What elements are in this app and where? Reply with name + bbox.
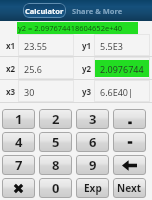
button[interactable]: x1 (0, 34, 76, 56)
staticText: 23.55 (24, 40, 48, 52)
button[interactable]: y3 (76, 80, 152, 102)
staticText: 4 (15, 133, 23, 151)
staticText: 5.5E3 (100, 40, 123, 52)
other: Clear (13, 183, 24, 194)
staticText: Share & More (72, 6, 122, 16)
staticText: 5 (52, 133, 60, 151)
staticText: y2 (82, 63, 92, 74)
button[interactable]: Share & More (72, 3, 122, 18)
button[interactable]: Backspace (113, 155, 146, 175)
button[interactable]: x3 (0, 80, 76, 102)
staticText: 3 (89, 110, 97, 128)
staticText: 2 (52, 110, 60, 128)
button[interactable]: y2 = 2.097674418604652e+40 (17, 22, 138, 34)
button[interactable]: y2 (76, 57, 152, 79)
staticText: y1 (82, 40, 92, 51)
staticText: y2 = 2.097674418604652e+40 (18, 23, 123, 33)
staticText: 30 (24, 86, 35, 98)
staticText: Calculator (25, 6, 64, 16)
other: Minus (123, 135, 137, 149)
staticText: Next (117, 181, 142, 195)
staticText: 8 (52, 156, 60, 174)
button[interactable]: 4 (2, 132, 35, 152)
button[interactable]: 2 (39, 109, 72, 129)
button[interactable]: 5 (39, 132, 72, 152)
button[interactable]: Decimal point (113, 109, 146, 129)
button[interactable]: Clear (2, 178, 35, 198)
button[interactable]: 8 (39, 155, 72, 175)
button[interactable]: 1 (2, 109, 35, 129)
staticText: 6.6E40| (100, 86, 133, 98)
staticText: Exp (84, 181, 102, 195)
staticText: 0 (52, 179, 60, 197)
button[interactable]: Calculator (23, 3, 66, 18)
button[interactable]: Exp (76, 178, 109, 198)
button[interactable]: 6 (76, 132, 109, 152)
button[interactable]: x2 (0, 57, 76, 79)
staticText: 6 (89, 133, 97, 151)
button[interactable]: y1 (76, 34, 152, 56)
button[interactable]: 3 (76, 109, 109, 129)
button[interactable]: 7 (2, 155, 35, 175)
button[interactable]: Minus (113, 132, 146, 152)
staticText: 2.0976744 (100, 63, 144, 75)
button[interactable]: 9 (76, 155, 109, 175)
staticText: 9 (89, 156, 97, 174)
button[interactable]: 0 (39, 178, 72, 198)
other: Backspace (122, 160, 137, 171)
staticText: 1 (15, 110, 23, 128)
staticText: x2 (6, 63, 16, 74)
staticText: x3 (6, 86, 16, 97)
button[interactable]: Next (113, 178, 146, 198)
staticText: x1 (6, 40, 16, 51)
staticText: 25.6 (24, 63, 42, 75)
staticText: 7 (15, 156, 23, 174)
other: Decimal point (123, 112, 137, 126)
staticText: y3 (82, 86, 92, 97)
